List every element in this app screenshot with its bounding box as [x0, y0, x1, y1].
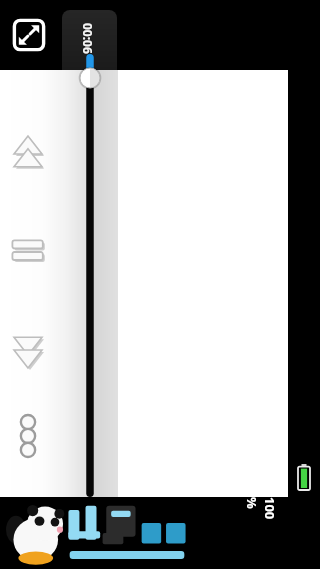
button[interactable]: More options: [11, 412, 45, 460]
button[interactable]: Previous: [8, 132, 48, 172]
staticText: 00:06: [80, 23, 96, 54]
button[interactable]: Seek position: [78, 66, 102, 90]
button[interactable]: Exit fullscreen: [12, 18, 46, 52]
button[interactable]: Next: [8, 332, 48, 372]
button[interactable]: Pause: [8, 232, 48, 272]
staticText: iPhone4S官方广告.mp4: [211, 69, 243, 101]
staticText: 100% 09:23: [247, 497, 279, 529]
button[interactable]: Seek bar: [80, 54, 100, 504]
